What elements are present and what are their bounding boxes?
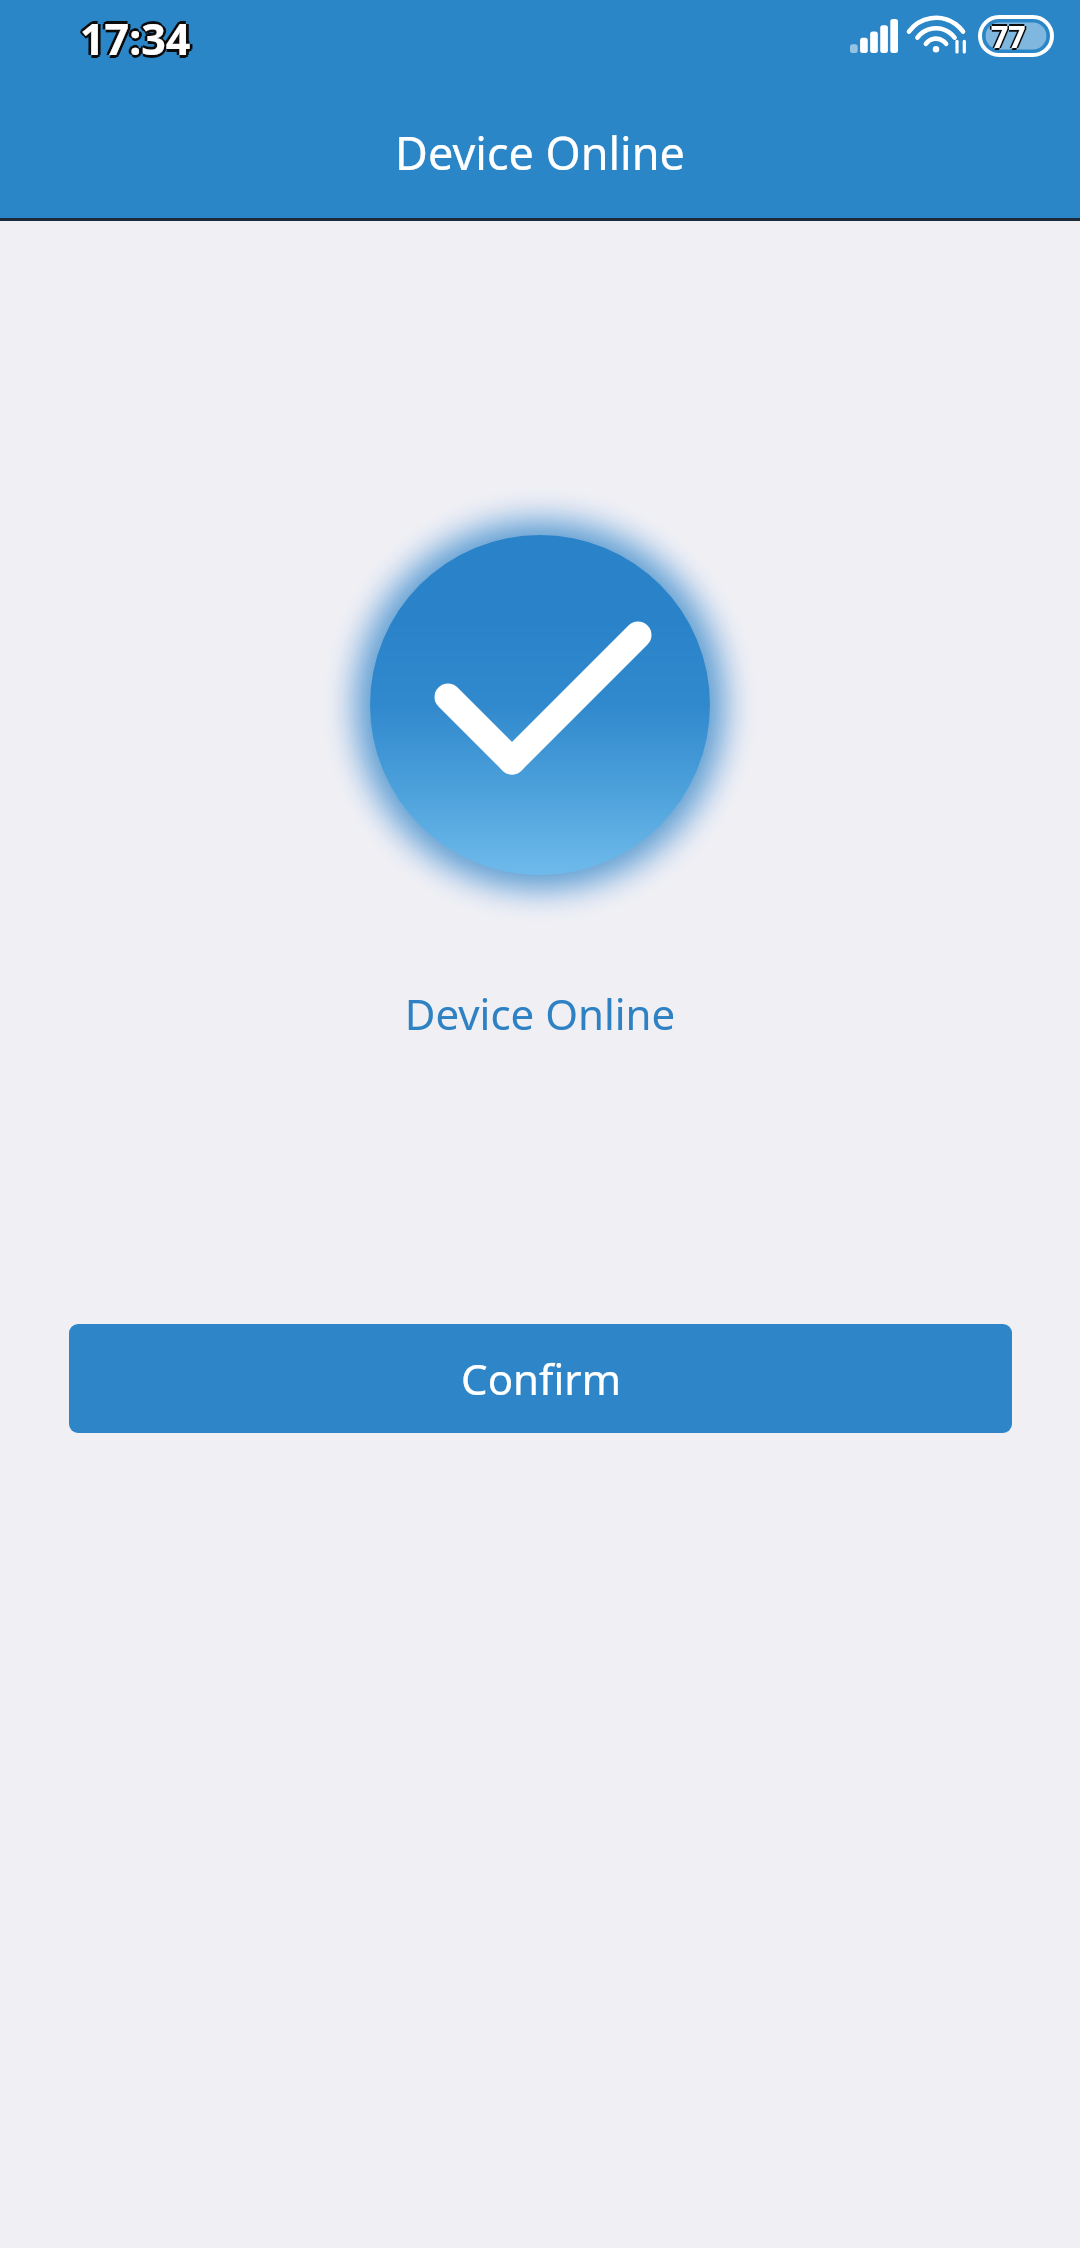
staticText: 17:34 <box>83 9 194 68</box>
staticText: 77 <box>991 16 1026 57</box>
staticText: 17:34 <box>82 11 193 70</box>
other: Device online, success <box>305 470 775 940</box>
staticText: 17:34 <box>78 7 189 66</box>
button[interactable]: Confirm <box>69 1324 1012 1433</box>
staticText: 77 <box>991 14 1026 55</box>
staticText: Confirm <box>461 1350 621 1407</box>
staticText: 17:34 <box>80 12 191 71</box>
staticText: 77 <box>991 18 1026 59</box>
staticText: 17:34 <box>80 6 191 65</box>
staticText: Device Online <box>0 985 1080 1042</box>
staticText: 77 <box>993 16 1028 57</box>
staticText: 17:34 <box>80 9 191 68</box>
staticText: 17:34 <box>77 9 188 68</box>
staticText: 77 <box>989 16 1024 57</box>
staticText: Device Online <box>0 122 1080 183</box>
